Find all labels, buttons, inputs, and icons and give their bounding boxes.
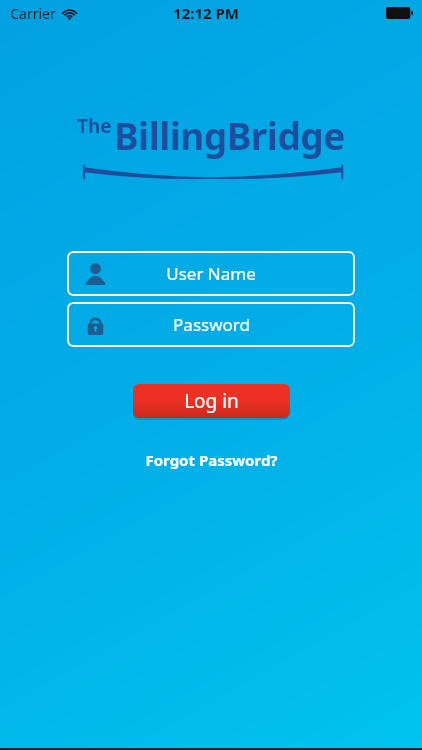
staticText: BillingBridge [114, 110, 345, 160]
button[interactable]: Forgot Password? [135, 446, 288, 474]
staticText: Password [173, 313, 250, 336]
staticText: Log in [184, 388, 239, 414]
staticText: Carrier [10, 4, 56, 23]
staticText: 12:12 PM [173, 3, 239, 23]
button[interactable]: User Name [67, 251, 355, 296]
button[interactable]: Log in [133, 384, 290, 418]
staticText: Forgot Password? [145, 450, 278, 470]
staticText: The [77, 113, 112, 139]
button[interactable]: Password [67, 302, 355, 347]
staticText: User Name [166, 262, 256, 285]
